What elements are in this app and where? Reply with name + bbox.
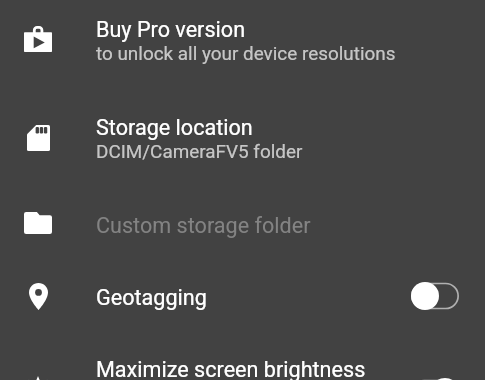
button[interactable]: Geotagging toggle (411, 281, 459, 311)
button[interactable]: Maximize screen brightness (0, 333, 485, 380)
staticText: Storage location (96, 115, 253, 140)
staticText: DCIM/CameraFV5 folder (96, 140, 303, 162)
staticText: Maximize screen brightness (96, 357, 366, 380)
staticText: Buy Pro version (96, 17, 246, 42)
staticText: Custom storage folder (96, 213, 311, 238)
button[interactable]: Maximize screen brightness toggle (411, 378, 459, 380)
button[interactable]: Storage location (0, 91, 485, 189)
button[interactable]: Buy Pro version (0, 0, 485, 91)
button[interactable]: Geotagging (0, 261, 485, 333)
staticText: Geotagging (96, 285, 207, 310)
button[interactable]: Custom storage folder (0, 189, 485, 261)
staticText: to unlock all your device resolutions (96, 42, 396, 64)
